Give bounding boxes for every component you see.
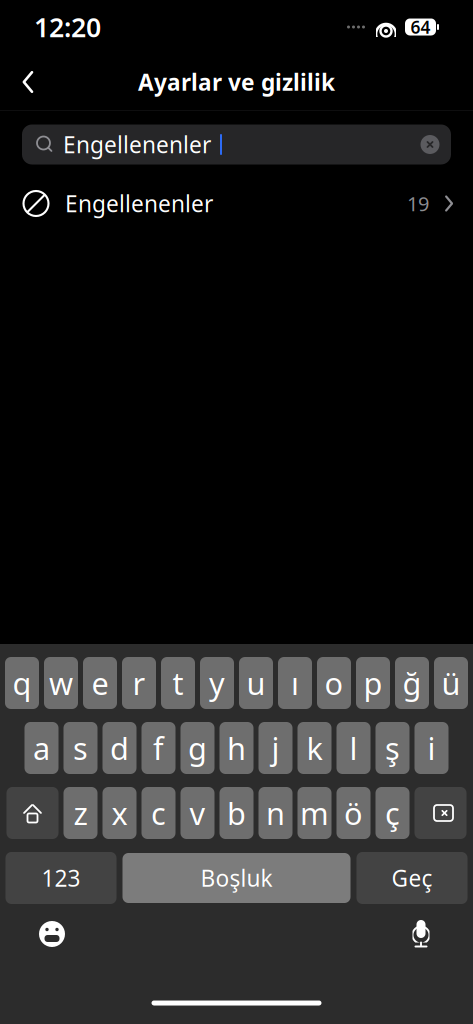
staticText: ç	[385, 793, 400, 833]
button[interactable]: Emoji keyboard	[30, 912, 74, 956]
staticText: x	[111, 793, 127, 833]
button[interactable]: f	[141, 722, 175, 774]
button[interactable]: w	[44, 657, 78, 709]
staticText: i	[427, 728, 435, 768]
staticText: n	[266, 793, 285, 833]
button[interactable]: ü	[434, 657, 468, 709]
button[interactable]: c	[141, 787, 175, 839]
button[interactable]: Engellenenler	[0, 178, 473, 228]
staticText: t	[172, 663, 183, 703]
staticText: ö	[344, 793, 363, 833]
staticText: 12:20	[34, 9, 101, 45]
button[interactable]: Dictation	[399, 912, 443, 956]
staticText: 64	[410, 15, 430, 38]
button[interactable]: Geç	[356, 852, 467, 904]
button[interactable]: p	[356, 657, 390, 709]
button[interactable]: x	[102, 787, 136, 839]
button[interactable]: ı	[278, 657, 312, 709]
staticText: v	[189, 793, 205, 833]
staticText: p	[363, 663, 382, 703]
staticText: f	[153, 728, 164, 768]
staticText: ü	[441, 663, 460, 703]
staticText: w	[49, 663, 73, 703]
button[interactable]: ğ	[395, 657, 429, 709]
button[interactable]: r	[122, 657, 156, 709]
button[interactable]: j	[258, 722, 292, 774]
button[interactable]: z	[63, 787, 97, 839]
staticText: s	[73, 728, 88, 768]
staticText: Engellenenler	[65, 188, 213, 218]
staticText: 19	[407, 190, 429, 217]
button[interactable]: b	[219, 787, 253, 839]
button[interactable]: e	[83, 657, 117, 709]
staticText: h	[227, 728, 246, 768]
button[interactable]: ö	[336, 787, 370, 839]
button[interactable]: ş	[375, 722, 409, 774]
staticText: y	[209, 663, 225, 703]
staticText: r	[132, 663, 145, 703]
staticText: ş	[385, 728, 400, 768]
button[interactable]: d	[102, 722, 136, 774]
staticText: Engellenenler	[63, 129, 211, 159]
staticText: e	[91, 663, 108, 703]
staticText: d	[110, 728, 129, 768]
button[interactable]: q	[5, 657, 39, 709]
button[interactable]: Clear text	[413, 127, 447, 161]
staticText: a	[33, 728, 50, 768]
button[interactable]: ç	[375, 787, 409, 839]
button[interactable]: v	[180, 787, 214, 839]
staticText: Boşluk	[200, 863, 272, 893]
staticText: j	[271, 728, 279, 768]
staticText: g	[188, 728, 207, 768]
staticText: ğ	[402, 663, 421, 703]
staticText: u	[246, 663, 265, 703]
staticText: ı	[291, 663, 299, 703]
button[interactable]: s	[63, 722, 97, 774]
staticText: z	[73, 793, 87, 833]
button[interactable]: Shift	[6, 787, 58, 839]
button[interactable]: 123	[5, 852, 116, 904]
staticText: c	[151, 793, 166, 833]
staticText: m	[300, 793, 329, 833]
staticText: q	[12, 663, 31, 703]
button[interactable]: y	[200, 657, 234, 709]
button[interactable]: o	[317, 657, 351, 709]
button[interactable]: l	[336, 722, 370, 774]
staticText: o	[324, 663, 343, 703]
staticText: Geç	[391, 863, 432, 893]
button[interactable]: m	[297, 787, 331, 839]
button[interactable]: i	[414, 722, 448, 774]
button[interactable]: Delete	[414, 787, 466, 839]
button[interactable]: u	[239, 657, 273, 709]
button[interactable]: Back	[6, 60, 50, 104]
staticText: Ayarlar ve gizlilik	[138, 67, 335, 97]
button[interactable]: k	[297, 722, 331, 774]
button[interactable]: g	[180, 722, 214, 774]
button[interactable]: t	[161, 657, 195, 709]
staticText: k	[306, 728, 322, 768]
button[interactable]: n	[258, 787, 292, 839]
button[interactable]: Boşluk	[122, 853, 350, 903]
button[interactable]: a	[24, 722, 58, 774]
button[interactable]: h	[219, 722, 253, 774]
staticText: 123	[41, 863, 80, 893]
staticText: l	[349, 728, 357, 768]
staticText: b	[227, 793, 246, 833]
